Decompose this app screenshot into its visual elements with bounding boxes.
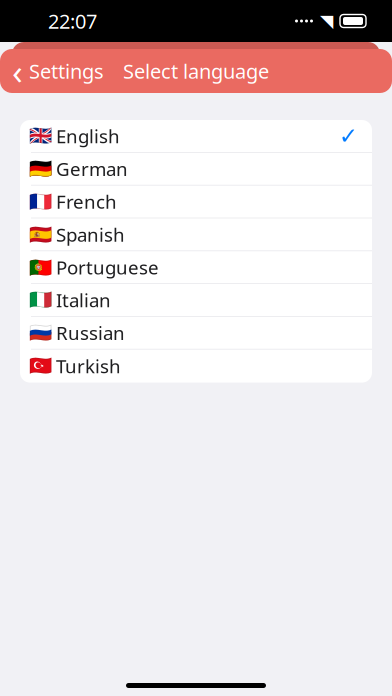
staticText: Turkish xyxy=(56,354,121,378)
staticText: Spanish xyxy=(56,222,125,247)
staticText: Russian xyxy=(56,320,125,345)
staticText: 🇵🇹 xyxy=(29,256,52,278)
staticText: ◥ xyxy=(320,11,333,31)
staticText: Italian xyxy=(56,288,111,312)
staticText: ✓ xyxy=(339,123,358,149)
staticText: 🇹🇷 xyxy=(29,355,52,377)
staticText: 🇬🇧 xyxy=(29,125,52,147)
staticText: 🇩🇪 xyxy=(29,158,52,179)
staticText: French xyxy=(56,189,117,214)
staticText: 🇪🇸 xyxy=(29,224,52,245)
staticText: ‹ xyxy=(12,48,23,94)
button[interactable]: 🇫🇷 xyxy=(20,186,372,218)
staticText: Select language xyxy=(123,58,269,84)
button[interactable]: ‹ xyxy=(0,49,114,93)
staticText: Settings xyxy=(29,58,104,84)
button[interactable]: 🇷🇺 xyxy=(20,317,372,350)
staticText: English xyxy=(56,124,120,148)
button[interactable]: 🇪🇸 xyxy=(20,218,372,251)
staticText: 🇫🇷 xyxy=(29,191,52,212)
staticText: 🇷🇺 xyxy=(29,322,52,343)
staticText: 🇮🇹 xyxy=(29,289,52,311)
button[interactable]: 🇬🇧 xyxy=(20,120,372,153)
staticText: Portuguese xyxy=(56,255,159,280)
staticText: German xyxy=(56,156,128,181)
staticText: 22:07 xyxy=(48,8,97,34)
button[interactable]: 🇹🇷 xyxy=(20,350,372,383)
button[interactable]: 🇩🇪 xyxy=(20,153,372,186)
button[interactable]: 🇵🇹 xyxy=(20,251,372,284)
button[interactable]: 🇮🇹 xyxy=(20,284,372,317)
